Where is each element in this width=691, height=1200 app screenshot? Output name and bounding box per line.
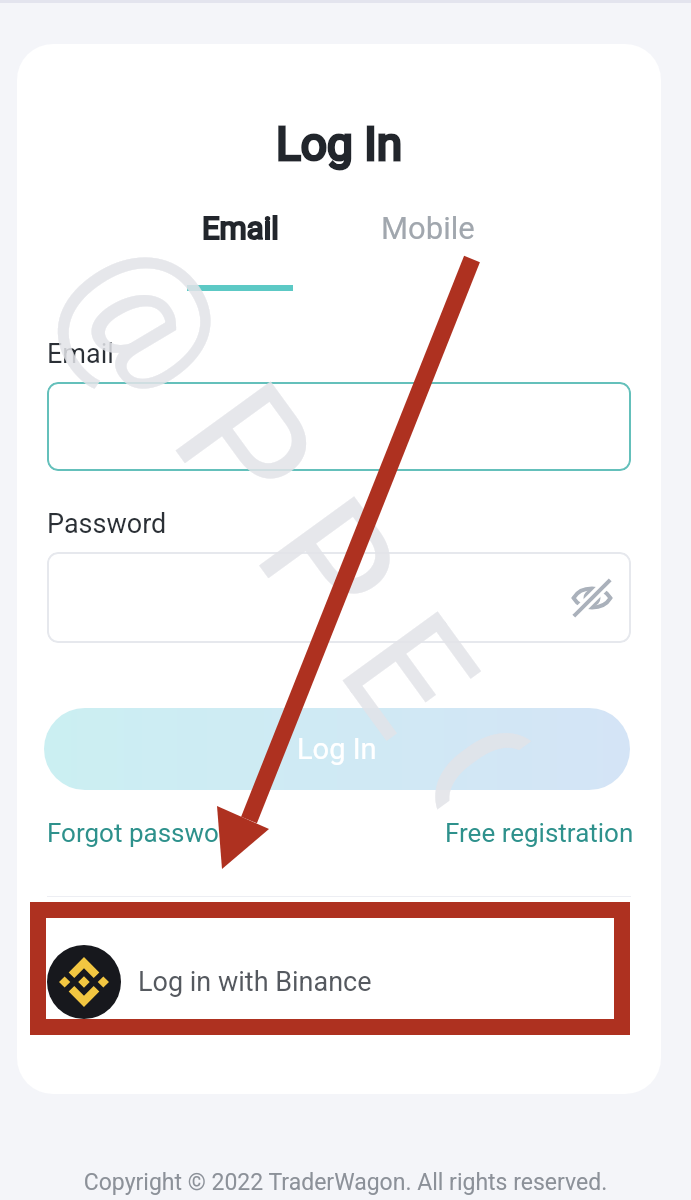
button[interactable]: Show password <box>47 552 631 643</box>
button[interactable] <box>47 382 631 471</box>
staticText: Mobile <box>381 210 475 246</box>
staticText: Password <box>47 508 167 540</box>
button[interactable]: Log in with Binance <box>47 934 631 1029</box>
staticText: Email <box>202 210 279 246</box>
staticText: Forgot password <box>47 818 243 848</box>
staticText: Free registration <box>445 818 634 848</box>
staticText: Log in with Binance <box>138 966 372 998</box>
staticText: Log In <box>297 732 377 766</box>
staticText: Email <box>47 338 114 370</box>
button[interactable]: Show password <box>567 573 617 623</box>
button[interactable]: Log In <box>44 708 630 790</box>
button[interactable]: Email <box>172 210 308 268</box>
staticText: Log In <box>17 117 661 171</box>
staticText: Log In <box>17 117 661 171</box>
staticText: @PPEOUS <box>26 199 561 833</box>
button[interactable]: Free registration <box>445 818 634 848</box>
button[interactable]: Mobile <box>360 210 496 268</box>
staticText: Copyright © 2022 TraderWagon. All rights… <box>0 1169 691 1196</box>
button[interactable]: Forgot password <box>47 818 243 848</box>
staticText: Email <box>202 210 279 246</box>
